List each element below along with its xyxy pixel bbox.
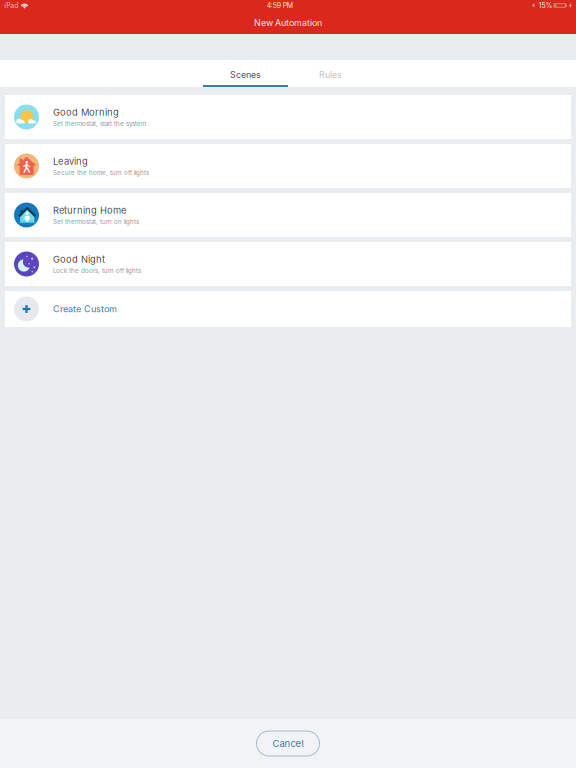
staticText: Secure the home, turn off lights (53, 169, 149, 176)
button[interactable]: Create Custom (5, 291, 571, 327)
staticText: Good Night (53, 254, 105, 265)
staticText: Scenes (230, 69, 261, 80)
staticText: New Automation (254, 17, 322, 28)
staticText: Cancel (272, 738, 303, 749)
staticText: Lock the doors, turn off lights (53, 267, 141, 274)
button[interactable]: Cancel (256, 731, 319, 756)
staticText: Leaving (53, 156, 88, 167)
staticText: Returning Home (53, 205, 126, 216)
staticText: Good Morning (53, 107, 119, 118)
staticText: 4:59 PM (267, 1, 293, 10)
button[interactable]: Good Night (5, 242, 571, 286)
button[interactable]: Scenes (203, 60, 288, 87)
button[interactable]: Rules (288, 60, 373, 87)
staticText: Set thermostat, start the system (53, 120, 146, 127)
button[interactable]: Good Morning (5, 95, 571, 139)
staticText: 15% (539, 1, 553, 10)
staticText: iPad (4, 1, 18, 10)
button[interactable]: Leaving (5, 144, 571, 188)
staticText: Rules (319, 69, 342, 80)
staticText: Set thermostat, turn on lights (53, 218, 139, 225)
staticText: Create Custom (53, 303, 117, 314)
button[interactable]: Returning Home (5, 193, 571, 237)
